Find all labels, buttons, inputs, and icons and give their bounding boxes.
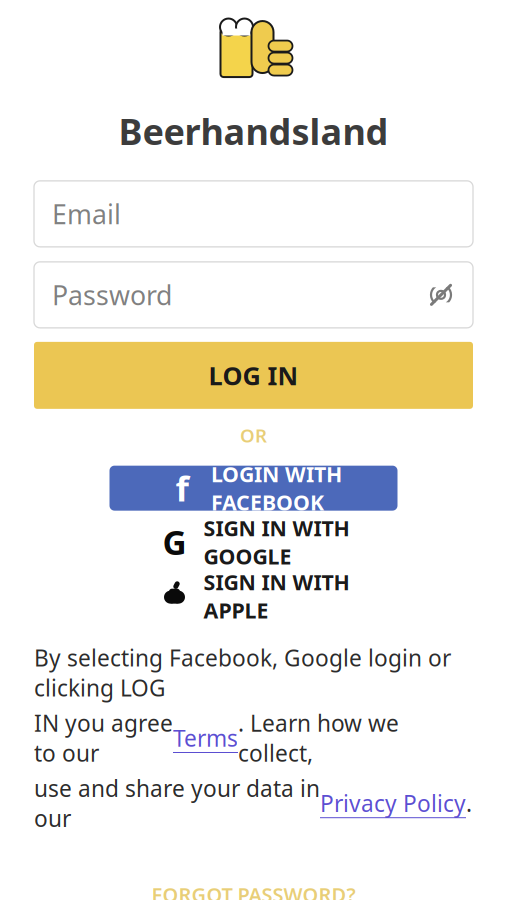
staticText: LOG IN [208,358,298,392]
button[interactable]: Terms [173,723,238,753]
staticText: Beerhandsland [118,107,388,155]
staticText: OR [240,423,267,448]
staticText: IN you agree to our [34,708,173,768]
staticText: G [162,520,186,564]
button[interactable]: FORGOT PASSWORD? [137,875,369,900]
staticText: Terms [173,723,238,753]
staticText: Password [52,277,172,312]
staticText: use and share your data in our [34,773,320,833]
staticText: Email [52,196,121,231]
staticText: . [466,788,472,818]
button[interactable]: Email [34,181,473,247]
staticText: SIGN IN WITH APPLE [203,568,349,624]
button[interactable]: Password [34,262,473,328]
button[interactable]: Privacy Policy [320,788,466,818]
button[interactable]: LOG IN [34,342,473,409]
staticText: By selecting Facebook, Google login or c… [34,643,451,703]
staticText: Privacy Policy [320,788,466,818]
staticText: FORGOT PASSWORD? [151,881,355,900]
staticText: . Learn how we collect, [238,708,399,768]
button[interactable]: f [109,466,397,511]
button[interactable]: G [113,520,393,565]
staticText: SIGN IN WITH GOOGLE [203,514,349,570]
staticText: LOGIN WITH FACEBOOK [211,460,342,516]
button[interactable]: SIGN IN WITH APPLE [120,574,386,619]
staticText: f [175,465,188,511]
